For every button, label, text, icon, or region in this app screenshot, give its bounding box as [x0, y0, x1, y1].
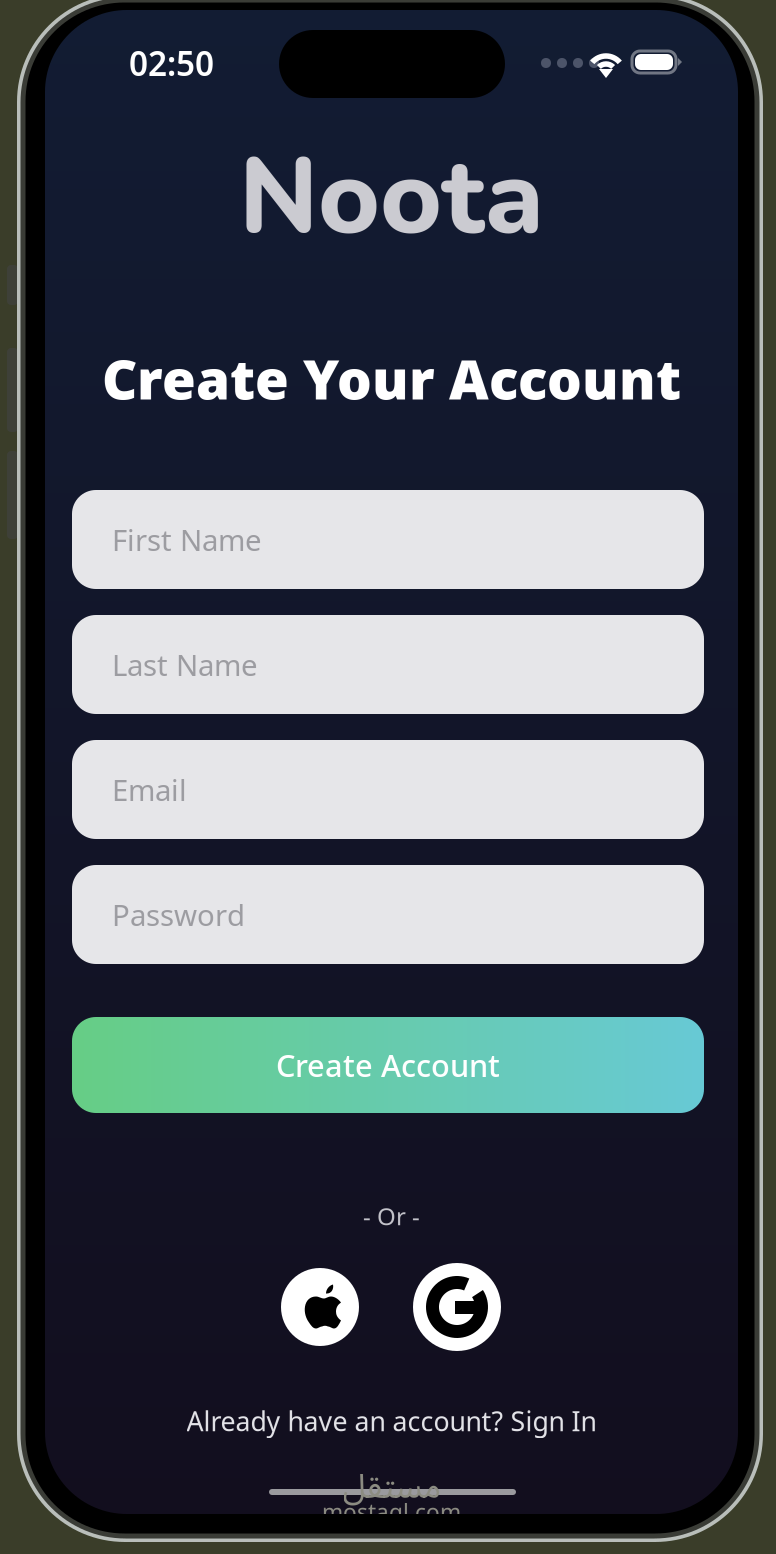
button[interactable]: Sign up with Google	[413, 1263, 501, 1351]
staticText: Create Your Account	[102, 342, 681, 415]
staticText: Create Account	[276, 1045, 500, 1085]
staticText: Email	[112, 770, 187, 809]
staticText: First Name	[112, 520, 262, 559]
button[interactable]: Password	[72, 865, 704, 964]
button[interactable]: Sign up with Apple	[281, 1268, 359, 1346]
staticText: Already have an account? Sign In	[186, 1403, 596, 1439]
button[interactable]: Already have an account? Sign In	[45, 1396, 738, 1446]
button[interactable]: Email	[72, 740, 704, 839]
staticText: - Or -	[363, 1200, 420, 1232]
staticText: Password	[112, 895, 245, 934]
staticText: Noota	[239, 126, 544, 270]
button[interactable]: Last Name	[72, 615, 704, 714]
button[interactable]: First Name	[72, 490, 704, 589]
staticText: مستقل	[342, 1452, 441, 1522]
staticText: mostaql.com	[322, 1497, 461, 1527]
button[interactable]: Create Account	[72, 1017, 704, 1113]
staticText: Last Name	[112, 645, 258, 684]
staticText: 02:50	[129, 41, 214, 85]
